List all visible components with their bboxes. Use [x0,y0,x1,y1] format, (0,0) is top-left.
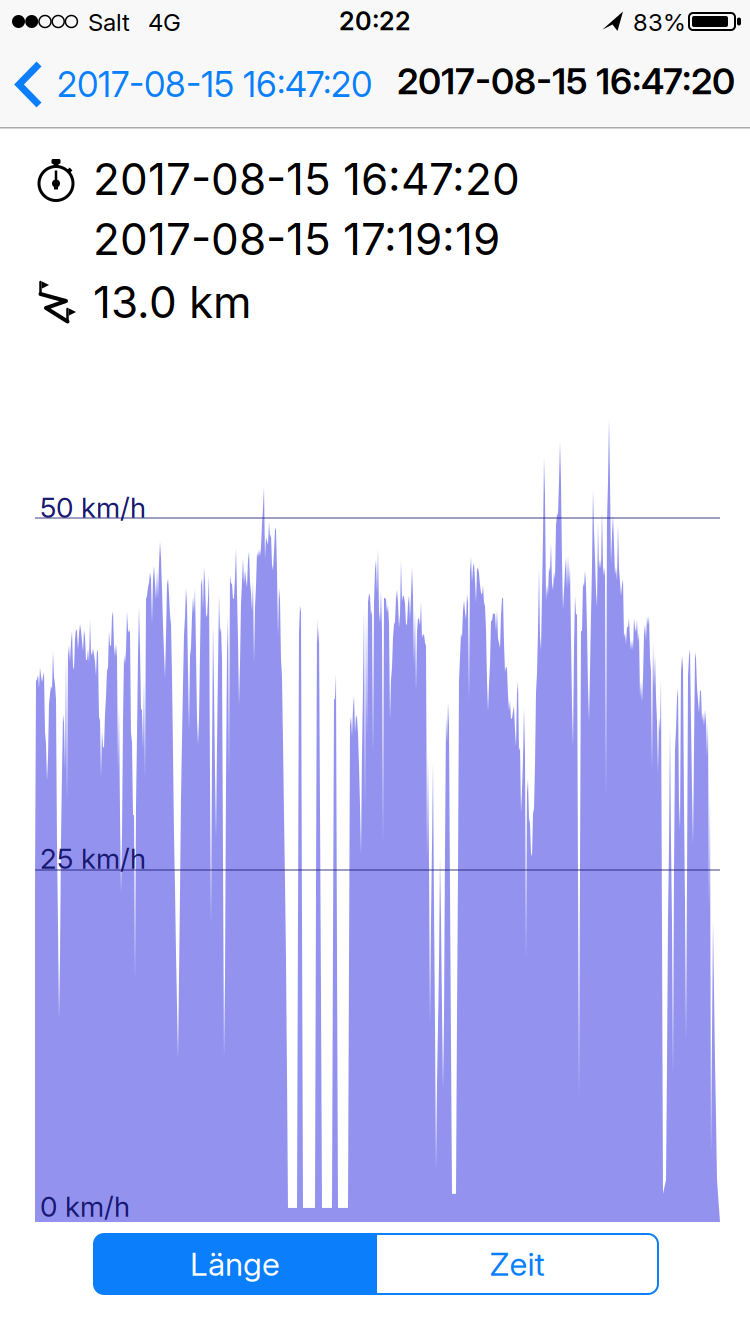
button[interactable]: 2017-08-15 16:47:20 [15,62,372,107]
staticText: 2017-08-15 16:47:20 [397,60,735,102]
staticText: 4G [148,8,181,36]
staticText: 2017-08-15 16:47:20 [93,153,520,205]
staticText: Zeit [489,1245,544,1283]
staticText: 2017-08-15 16:47:20 [57,64,372,105]
staticText: 50 km/h [40,491,146,524]
button[interactable]: Länge [94,1234,376,1294]
staticText: 20:22 [339,6,411,36]
staticText: Länge [190,1245,280,1283]
staticText: 0 km/h [40,1190,130,1223]
staticText: 25 km/h [40,842,146,875]
staticText: 83% [633,8,686,36]
staticText: 2017-08-15 17:19:19 [93,213,500,265]
button[interactable]: Zeit [376,1234,658,1294]
staticText: 13.0 km [93,276,252,328]
staticText: Salt [88,8,130,36]
